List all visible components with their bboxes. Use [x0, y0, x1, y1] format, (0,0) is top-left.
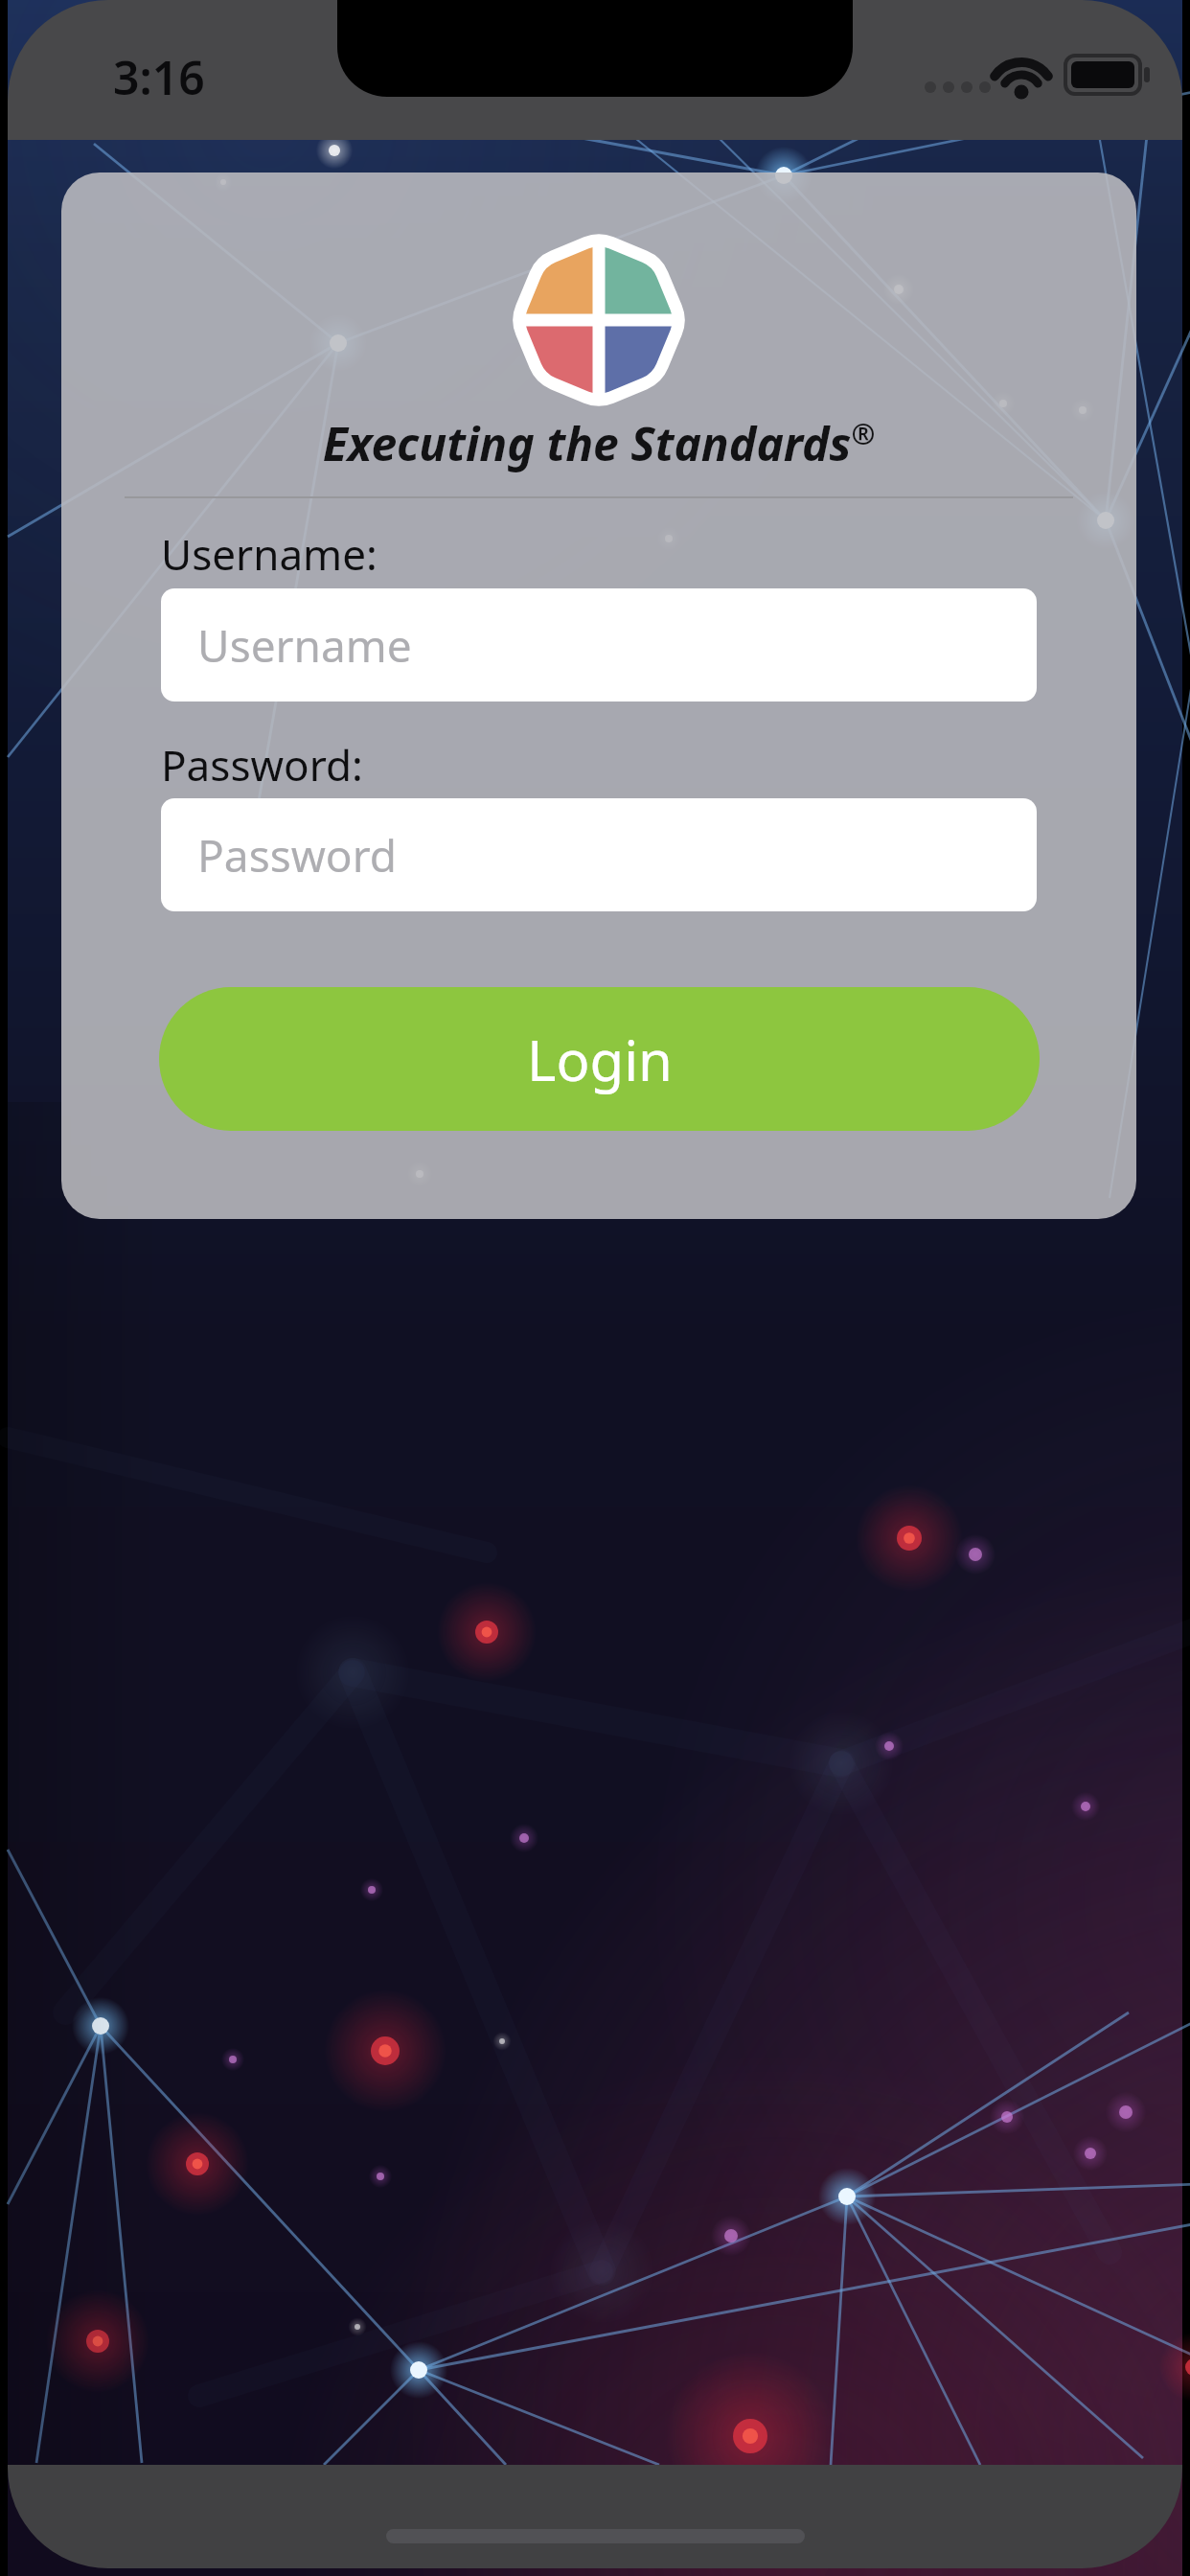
staticText: 3:16: [113, 46, 205, 108]
staticText: Executing the Standards®: [61, 412, 1136, 474]
staticText: Username: [197, 615, 412, 676]
staticText: Username:: [161, 525, 378, 583]
staticText: Password: [197, 825, 398, 885]
staticText: Password:: [161, 736, 363, 793]
button[interactable]: Username: [161, 588, 1037, 701]
button[interactable]: Password: [161, 798, 1037, 911]
staticText: Login: [527, 1022, 673, 1097]
button[interactable]: Login: [159, 987, 1040, 1131]
